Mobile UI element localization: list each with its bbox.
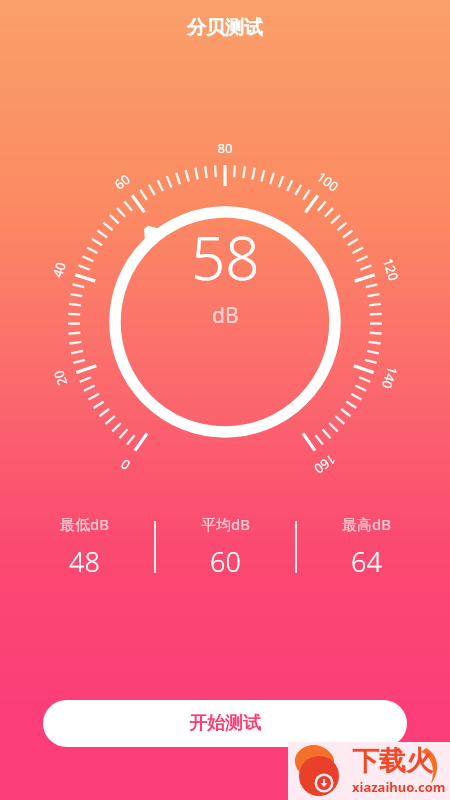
staticText: 64: [351, 543, 382, 580]
staticText: 分贝测试: [187, 16, 263, 40]
staticText: 开始测试: [189, 712, 261, 735]
button[interactable]: 平均dB: [156, 514, 295, 580]
staticText: 最高dB: [342, 514, 391, 534]
staticText: xiazaihuo.com: [352, 778, 446, 796]
staticText: 最低dB: [60, 514, 109, 534]
button[interactable]: 最高dB: [297, 514, 436, 580]
button[interactable]: 开始测试: [43, 700, 407, 747]
other: xiazaihuo.com watermark: [288, 742, 450, 800]
staticText: 48: [69, 543, 100, 580]
staticText: 58: [191, 216, 260, 298]
staticText: dB: [212, 301, 239, 330]
staticText: 下载火: [352, 744, 433, 778]
button[interactable]: 最低dB: [14, 514, 154, 580]
staticText: 平均dB: [201, 514, 250, 534]
staticText: 60: [210, 543, 241, 580]
